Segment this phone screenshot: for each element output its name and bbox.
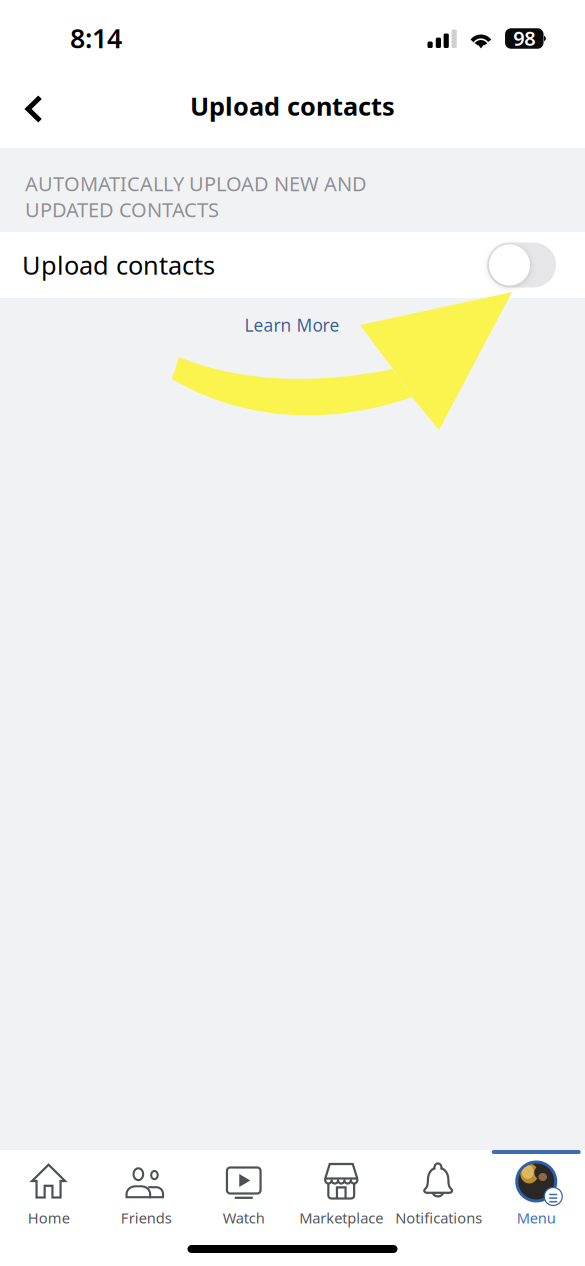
button[interactable]: Watch bbox=[195, 1150, 292, 1232]
staticText: 98 bbox=[513, 25, 535, 51]
staticText: AUTOMATICALLY UPLOAD NEW AND bbox=[25, 170, 367, 197]
staticText: Menu bbox=[517, 1208, 556, 1227]
staticText: 8:14 bbox=[70, 20, 122, 56]
staticText: Watch bbox=[223, 1208, 265, 1227]
button[interactable]: Marketplace bbox=[292, 1150, 390, 1232]
button[interactable]: Home bbox=[0, 1150, 97, 1232]
button[interactable]: Upload contacts bbox=[0, 232, 585, 298]
staticText: Upload contacts bbox=[190, 89, 395, 123]
button[interactable]: Menu bbox=[487, 1150, 585, 1232]
staticText: Learn More bbox=[244, 313, 339, 336]
button[interactable]: Learn More bbox=[192, 307, 392, 343]
button[interactable]: Notifications bbox=[390, 1150, 487, 1232]
staticText: Notifications bbox=[395, 1208, 482, 1227]
staticText: UPDATED CONTACTS bbox=[25, 196, 219, 223]
staticText: Marketplace bbox=[299, 1208, 383, 1227]
staticText: Home bbox=[28, 1208, 70, 1227]
staticText: Upload contacts bbox=[22, 248, 215, 282]
button[interactable]: Back bbox=[3, 78, 65, 140]
staticText: Friends bbox=[121, 1208, 172, 1227]
button[interactable]: Friends bbox=[97, 1150, 195, 1232]
